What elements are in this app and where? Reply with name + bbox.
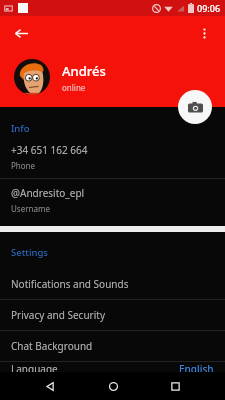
staticText: Chat Background [11, 339, 93, 353]
staticText: Andrés [62, 62, 106, 80]
staticText: +34 651 162 664 [11, 143, 88, 157]
button[interactable]: Language [0, 362, 225, 372]
button[interactable]: Change profile photo [178, 90, 212, 124]
staticText: English [179, 362, 214, 372]
button[interactable]: Profile photo [14, 59, 50, 95]
button[interactable]: Privacy and Security [0, 300, 225, 330]
staticText: Phone [11, 160, 36, 171]
button[interactable]: Recent apps [162, 373, 188, 399]
staticText: online [62, 82, 86, 93]
staticText: Privacy and Security [11, 308, 106, 322]
button[interactable]: +34 651 162 664 [0, 143, 225, 178]
button[interactable]: Chat Background [0, 331, 225, 361]
button[interactable]: Home [100, 373, 126, 399]
staticText: 09:06 [197, 2, 221, 14]
button[interactable]: Back [37, 373, 63, 399]
staticText: Notifications and Sounds [11, 277, 129, 291]
staticText: Username [11, 203, 50, 214]
button[interactable]: @Andresito_epl [0, 179, 225, 221]
staticText: Settings [11, 246, 48, 259]
staticText: @Andresito_epl [11, 186, 85, 200]
staticText: Language [11, 362, 58, 372]
staticText: Info [11, 122, 30, 135]
button[interactable]: More options [191, 20, 217, 46]
button[interactable]: Back [8, 20, 34, 46]
button[interactable]: Notifications and Sounds [0, 269, 225, 299]
